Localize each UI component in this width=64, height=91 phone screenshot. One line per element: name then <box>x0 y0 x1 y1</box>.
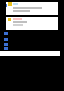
button[interactable] <box>6 2 58 15</box>
button[interactable] <box>6 17 58 30</box>
